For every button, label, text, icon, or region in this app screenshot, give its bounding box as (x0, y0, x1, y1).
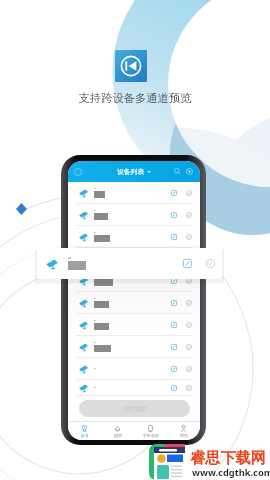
button[interactable]: Edit (68, 314, 200, 336)
staticText: 报警 (114, 433, 122, 438)
button[interactable]: Select (206, 259, 215, 268)
button[interactable]: Edit (68, 270, 200, 292)
staticText: 设备列表 (117, 167, 145, 176)
button[interactable]: Edit (68, 226, 200, 248)
button[interactable]: Edit (68, 182, 200, 204)
button[interactable]: Edit (171, 385, 177, 391)
button[interactable]: 手机画面 (134, 422, 167, 440)
button[interactable]: Edit (171, 190, 177, 196)
button[interactable]: Select (186, 385, 192, 391)
button[interactable]: Select (186, 212, 192, 218)
staticText: 设备 (81, 433, 89, 438)
button[interactable]: Menu (74, 168, 82, 176)
button[interactable]: Edit (68, 358, 200, 380)
staticText: 手机画面 (143, 433, 159, 438)
staticText: 我的 (180, 433, 188, 438)
button[interactable]: Select (186, 322, 192, 328)
button[interactable]: Edit (171, 344, 177, 350)
button[interactable]: Edit (183, 259, 192, 268)
button[interactable]: Edit (171, 278, 177, 284)
button[interactable]: 我的 (167, 422, 200, 440)
button[interactable]: Select (186, 234, 192, 240)
button[interactable]: Edit (68, 204, 200, 226)
button[interactable]: Edit (68, 336, 200, 358)
staticText: 睿思下载网 (190, 448, 266, 467)
button[interactable]: Select (186, 256, 192, 262)
button[interactable]: Edit (171, 212, 177, 218)
button[interactable]: Select (186, 300, 192, 306)
button[interactable]: 设备 (68, 422, 101, 440)
button[interactable]: Select (186, 190, 192, 196)
button[interactable]: Edit (68, 248, 200, 270)
button[interactable]: Edit (37, 248, 222, 279)
button[interactable]: Select (186, 366, 192, 372)
button[interactable]: Select (186, 278, 192, 284)
button[interactable]: Edit (171, 366, 177, 372)
button[interactable]: Edit (68, 292, 200, 314)
staticText: 支持跨设备多通道预览 (0, 91, 270, 105)
button[interactable]: Select (186, 344, 192, 350)
button[interactable]: Edit (171, 234, 177, 240)
staticText: 实时预览 (123, 405, 147, 413)
button[interactable]: Search (174, 168, 181, 175)
staticText: www.cdgthk.com (192, 466, 270, 479)
button[interactable]: 实时预览 (79, 400, 190, 417)
button[interactable]: Preview (115, 50, 147, 82)
button[interactable]: Edit (171, 300, 177, 306)
button[interactable]: Edit (68, 380, 200, 396)
button[interactable]: Edit (171, 322, 177, 328)
button[interactable]: Add device (186, 168, 193, 175)
button[interactable]: 报警 (101, 422, 134, 440)
